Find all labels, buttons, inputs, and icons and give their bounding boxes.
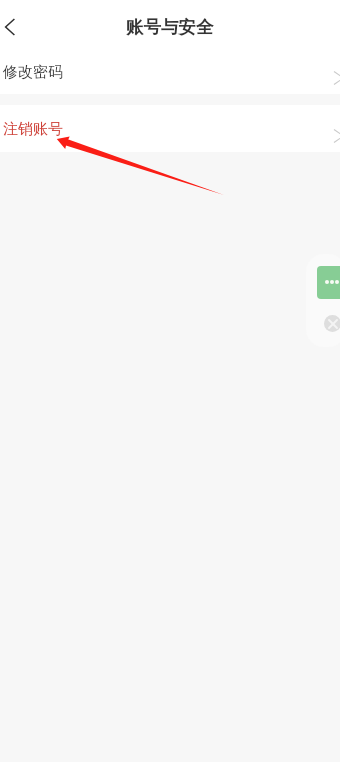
button[interactable]: More options	[317, 266, 340, 299]
button[interactable]: Close	[324, 315, 340, 332]
staticText: 账号与安全	[126, 16, 214, 38]
button[interactable]: 注销账号	[0, 105, 340, 152]
button[interactable]: Back	[0, 2, 34, 46]
button[interactable]: 修改密码	[0, 48, 340, 94]
staticText: 注销账号	[3, 120, 63, 139]
staticText: 修改密码	[3, 63, 63, 82]
